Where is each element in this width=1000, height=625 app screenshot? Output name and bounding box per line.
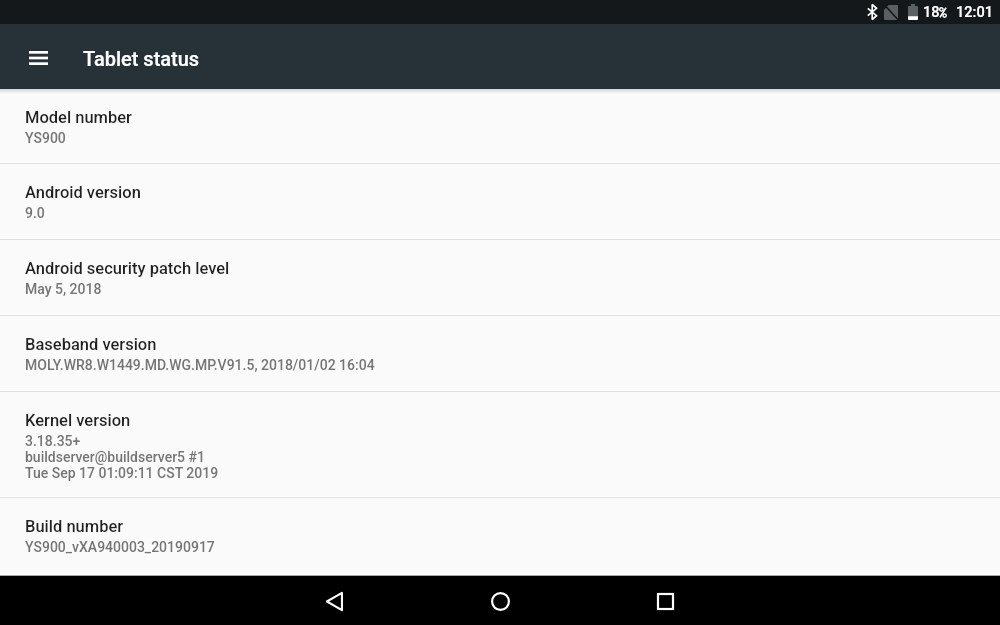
button[interactable]: Kernel version	[0, 392, 1000, 496]
button[interactable]: Model number	[0, 89, 1000, 162]
button[interactable]: Back	[310, 577, 358, 625]
staticText: May 5, 2018	[25, 281, 102, 297]
button[interactable]: Android security patch level	[0, 240, 1000, 314]
staticText: Android version	[25, 183, 141, 202]
staticText: YS900_vXA940003_20190917	[25, 539, 215, 555]
staticText: Baseband version	[25, 335, 157, 354]
button[interactable]: Baseband version	[0, 316, 1000, 390]
staticText: Android security patch level	[25, 259, 230, 278]
staticText: Kernel version	[25, 411, 131, 430]
button[interactable]: Home	[476, 577, 524, 625]
button[interactable]: Build number	[0, 498, 1000, 576]
button[interactable]: Android version	[0, 164, 1000, 238]
staticText: 18	[923, 3, 940, 20]
staticText: Tablet status	[83, 47, 200, 70]
staticText: Build number	[25, 517, 124, 536]
staticText: 3.18.35+ buildserver@buildserver5 #1 Tue…	[25, 433, 219, 481]
staticText: YS900	[25, 130, 66, 146]
button[interactable]: Open navigation menu	[14, 34, 62, 82]
staticText: 12:01	[956, 3, 994, 20]
staticText: Model number	[25, 108, 132, 127]
staticText: 9.0	[25, 205, 45, 221]
button[interactable]: Recent apps	[641, 577, 689, 625]
staticText: MOLY.WR8.W1449.MD.WG.MP.V91.5, 2018/01/0…	[25, 357, 375, 373]
